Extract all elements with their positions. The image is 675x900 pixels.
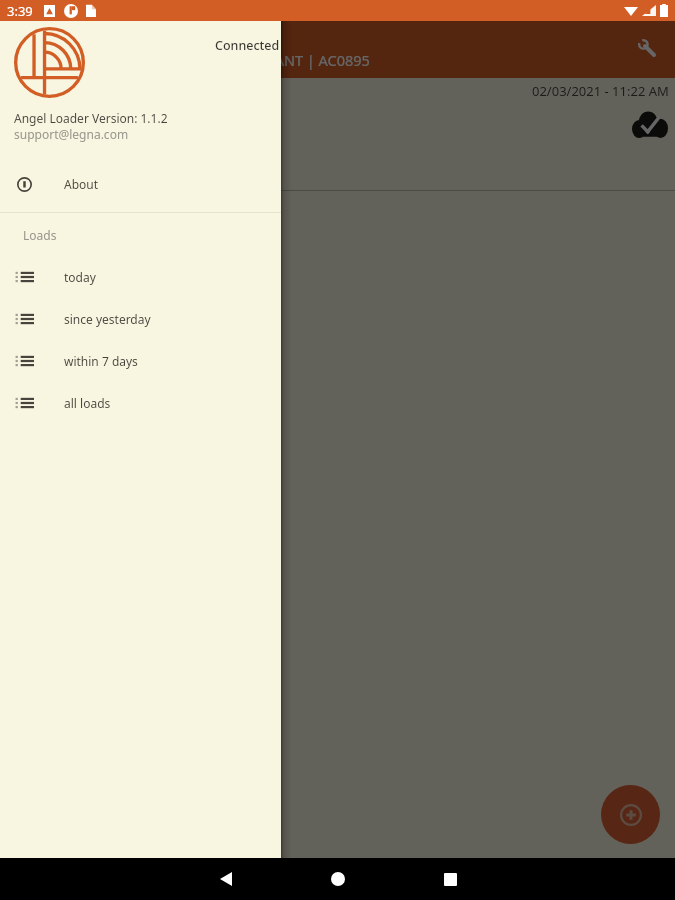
staticText: 02/03/2021 - 11:22 AM bbox=[532, 82, 669, 100]
button[interactable]: About bbox=[0, 163, 281, 205]
staticText: About bbox=[64, 176, 99, 192]
staticText: today bbox=[64, 269, 96, 285]
button[interactable]: within 7 days bbox=[0, 340, 281, 382]
button[interactable]: Back bbox=[205, 858, 247, 900]
staticText: within 7 days bbox=[64, 353, 138, 369]
button[interactable]: all loads bbox=[0, 382, 281, 424]
button[interactable]: Recents bbox=[429, 858, 471, 900]
button[interactable]: Open navigation drawer bbox=[8, 26, 50, 68]
staticText: Angel Loader Version: 1.1.2 bbox=[14, 110, 168, 126]
button[interactable]: since yesterday bbox=[0, 298, 281, 340]
staticText: 3:39 bbox=[7, 2, 33, 20]
staticText: since yesterday bbox=[64, 311, 151, 327]
button[interactable]: Home bbox=[317, 858, 359, 900]
button[interactable]: Add bbox=[601, 785, 660, 844]
staticText: all loads bbox=[64, 395, 111, 411]
staticText: Connected bbox=[215, 37, 280, 54]
staticText: Loads bbox=[23, 227, 57, 243]
button[interactable]: today bbox=[0, 256, 281, 298]
staticText: ANGEL PLANT | AC0895 bbox=[208, 50, 370, 70]
staticText: support@legna.com bbox=[14, 126, 129, 142]
button[interactable]: Settings bbox=[625, 26, 667, 68]
